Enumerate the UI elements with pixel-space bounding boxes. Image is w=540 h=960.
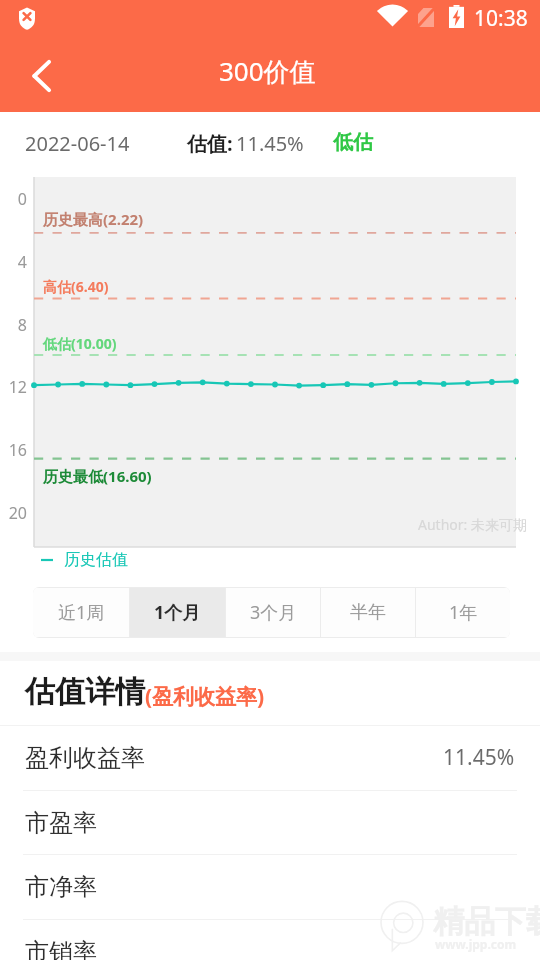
staticText: 历史估值	[64, 550, 128, 570]
button[interactable]: Back	[12, 46, 72, 106]
staticText: 4	[0, 251, 27, 273]
staticText: 11.45%	[236, 130, 304, 157]
button[interactable]: 半年	[321, 588, 415, 637]
staticText: 12	[0, 376, 27, 398]
staticText: 精品下载	[433, 902, 540, 941]
staticText: 高估(6.40)	[43, 277, 109, 296]
button[interactable]: 市盈率	[25, 791, 515, 854]
staticText: Author: 未来可期	[418, 515, 527, 534]
staticText: 16	[0, 439, 27, 461]
staticText: 市净率	[25, 872, 97, 902]
staticText: 低估(10.00)	[43, 334, 117, 353]
button[interactable]: 盈利收益率	[25, 726, 515, 789]
button[interactable]: 近1周	[33, 588, 129, 637]
staticText: www.jpp.com	[435, 936, 517, 952]
staticText: 300价值	[219, 53, 316, 89]
staticText: 近1周	[58, 600, 105, 625]
staticText: 历史最高(2.22)	[43, 209, 144, 229]
staticText: 11.45%	[443, 743, 515, 772]
staticText: 盈利收益率	[25, 743, 145, 773]
staticText: 低估	[333, 130, 373, 155]
staticText: 2022-06-14	[25, 130, 130, 157]
staticText: 半年	[350, 601, 386, 624]
staticText: 3个月	[250, 600, 297, 625]
staticText: 10:38	[474, 4, 528, 33]
button[interactable]: 市净率	[25, 855, 515, 918]
staticText: 历史最低(16.60)	[43, 466, 152, 486]
staticText: (盈利收益率)	[145, 682, 265, 711]
button[interactable]: 1个月	[130, 588, 225, 637]
staticText: 8	[0, 314, 27, 336]
staticText: 20	[0, 502, 27, 524]
staticText: 估值:	[187, 130, 233, 157]
staticText: 市销率	[25, 937, 97, 960]
staticText: 0	[0, 188, 27, 210]
staticText: 估值详情	[25, 673, 145, 711]
button[interactable]: 市销率	[25, 920, 515, 960]
button[interactable]: 3个月	[226, 588, 320, 637]
button[interactable]: 1年	[416, 588, 510, 637]
staticText: 市盈率	[25, 808, 97, 838]
staticText: 1年	[449, 600, 478, 625]
staticText: 1个月	[154, 600, 201, 625]
